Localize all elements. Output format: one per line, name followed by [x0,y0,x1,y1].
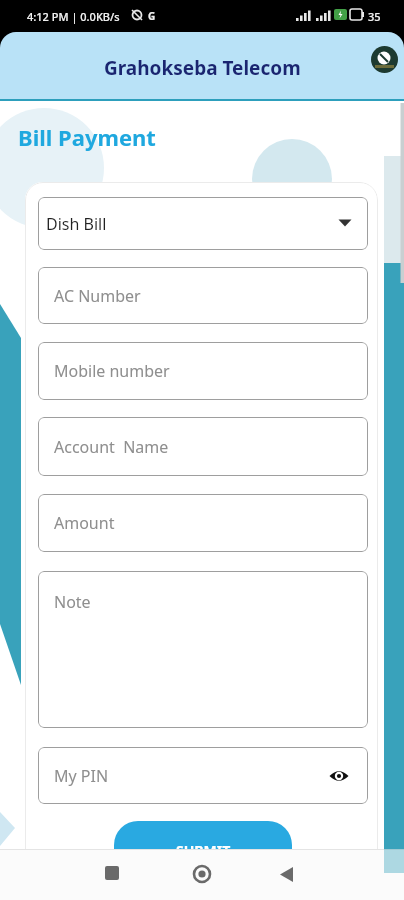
staticText: SUBMIT [176,841,231,860]
button[interactable]: Mobile number [38,342,368,400]
staticText: Bill Payment [18,122,156,152]
button[interactable]: SUBMIT [114,821,292,881]
button[interactable] [270,856,304,890]
button[interactable] [371,46,398,73]
button[interactable]: AC Number [38,267,368,324]
staticText: My PIN [54,765,109,787]
staticText: G [148,9,156,23]
staticText: Mobile number [54,360,170,382]
button[interactable]: Note [38,571,368,728]
button[interactable]: Dish Bill [38,197,368,250]
button[interactable]: My PIN [38,747,368,804]
button[interactable]: Account Name [38,417,368,476]
button[interactable] [185,856,219,890]
staticText: AC Number [54,285,141,307]
button[interactable] [95,856,129,890]
staticText: Account Name [54,436,169,458]
staticText: Amount [54,512,115,534]
staticText: Dish Bill [46,213,107,235]
button[interactable]: Amount [38,494,368,552]
staticText: 35 [368,9,381,24]
staticText: Grahokseba Telecom [104,55,301,81]
staticText: 4:12 PM | 0.0KB/s [27,9,120,24]
staticText: Note [54,591,91,613]
